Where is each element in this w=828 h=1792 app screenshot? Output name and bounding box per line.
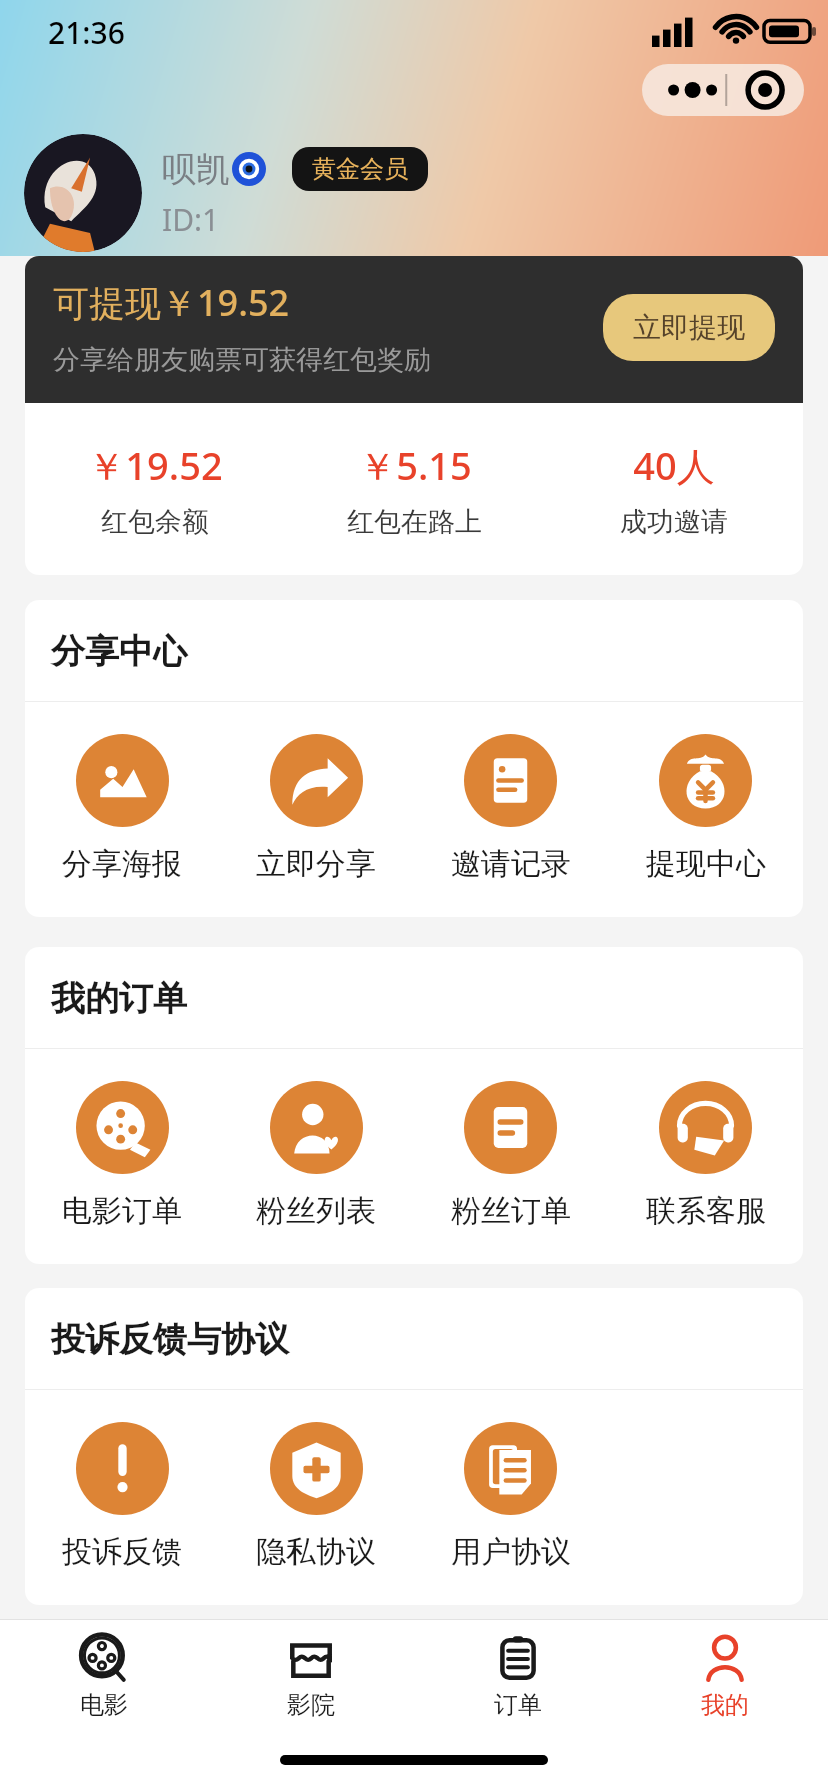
button[interactable]: 我的 <box>621 1620 828 1728</box>
staticText: 投诉反馈与协议 <box>51 1318 289 1361</box>
button[interactable]: 投诉反馈 <box>25 1422 219 1571</box>
staticText: 红包在路上 <box>347 505 482 539</box>
button[interactable]: ￥19.52 <box>25 439 285 539</box>
staticText: ￥5.15 <box>358 439 472 491</box>
button[interactable]: More and close <box>642 64 804 116</box>
staticText: 联系客服 <box>646 1192 766 1230</box>
button[interactable]: 粉丝列表 <box>219 1081 413 1230</box>
button[interactable]: 电影订单 <box>25 1081 219 1230</box>
button[interactable]: 40人 <box>544 439 803 539</box>
button[interactable]: 分享海报 <box>25 734 219 883</box>
staticText: 红包余额 <box>101 505 209 539</box>
staticText: 电影订单 <box>62 1192 182 1230</box>
button[interactable]: 可提现￥19.52 <box>25 256 803 403</box>
staticText: 提现中心 <box>646 845 766 883</box>
staticText: 粉丝订单 <box>451 1192 571 1230</box>
button[interactable]: 立即分享 <box>219 734 413 883</box>
button[interactable]: 提现中心 <box>608 734 803 883</box>
button[interactable]: 电影 <box>0 1620 207 1728</box>
staticText: 用户协议 <box>451 1533 571 1571</box>
staticText: ￥19.52 <box>87 439 223 491</box>
staticText: 21:36 <box>48 12 125 53</box>
button[interactable]: 订单 <box>414 1620 621 1728</box>
staticText: 订单 <box>494 1690 542 1720</box>
staticText: 分享海报 <box>62 845 182 883</box>
staticText: 我的订单 <box>51 977 187 1020</box>
button[interactable]: 黄金会员 <box>292 147 428 191</box>
button[interactable]: ￥5.15 <box>285 439 544 539</box>
staticText: 分享给朋友购票可获得红包奖励 <box>53 343 431 377</box>
button[interactable]: 影院 <box>207 1620 414 1728</box>
button[interactable]: 用户协议 <box>413 1422 608 1571</box>
button[interactable]: 粉丝订单 <box>413 1081 608 1230</box>
button[interactable]: 邀请记录 <box>413 734 608 883</box>
button[interactable]: 呗凯 <box>24 134 828 252</box>
staticText: 可提现￥19.52 <box>53 278 290 327</box>
staticText: 电影 <box>80 1690 128 1720</box>
staticText: 40人 <box>633 439 715 491</box>
staticText: 立即分享 <box>256 845 376 883</box>
staticText: 隐私协议 <box>256 1533 376 1571</box>
staticText: 呗凯 <box>162 148 230 191</box>
button[interactable]: 联系客服 <box>608 1081 803 1230</box>
staticText: ID:1 <box>162 199 220 240</box>
staticText: 邀请记录 <box>451 845 571 883</box>
staticText: 影院 <box>287 1690 335 1720</box>
staticText: 我的 <box>701 1690 749 1720</box>
button[interactable]: 隐私协议 <box>219 1422 413 1571</box>
staticText: 成功邀请 <box>620 505 728 539</box>
staticText: 黄金会员 <box>312 154 408 184</box>
staticText: 投诉反馈 <box>62 1533 182 1571</box>
staticText: 粉丝列表 <box>256 1192 376 1230</box>
staticText: 立即提现 <box>633 310 745 345</box>
button[interactable]: 立即提现 <box>603 294 775 361</box>
staticText: 分享中心 <box>51 630 187 673</box>
